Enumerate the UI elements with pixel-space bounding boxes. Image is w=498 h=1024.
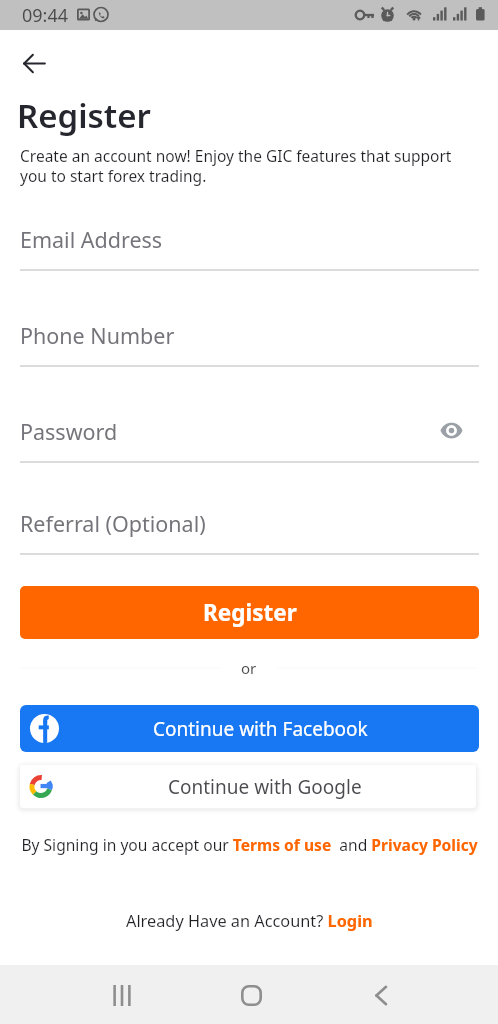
button[interactable]: Referral (Optional) [20,506,479,555]
button[interactable]: Recent apps [97,971,147,1019]
staticText: Password [20,417,118,446]
button[interactable]: Phone Number [20,318,479,367]
button[interactable]: Continue with Google [20,765,476,808]
button[interactable]: Register [20,586,479,639]
staticText: Continue with Facebook [153,716,368,742]
button[interactable]: Password [20,414,479,463]
button[interactable]: Show password [434,413,468,447]
staticText: Email Address [20,225,163,254]
staticText: Referral (Optional) [20,509,206,538]
button[interactable]: Back [14,43,54,83]
button[interactable]: Email Address [20,222,479,271]
button[interactable]: Back [356,971,406,1019]
staticText: Phone Number [20,321,175,350]
staticText: Register [17,93,151,138]
staticText: Create an account now! Enjoy the GIC fea… [20,145,460,186]
staticText: Continue with Google [168,774,362,800]
button[interactable]: Home [226,971,276,1019]
staticText: or [241,658,257,678]
staticText: 09:44 [22,3,69,28]
button[interactable]: Already Have an Account? Login [126,910,373,932]
staticText: Register [203,597,297,628]
button[interactable]: Continue with Facebook [20,705,479,752]
staticText: By Signing in you accept our Terms of us… [21,834,478,855]
